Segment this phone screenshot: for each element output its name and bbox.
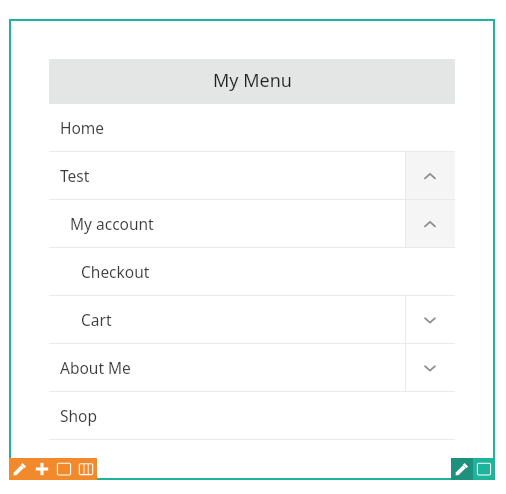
button[interactable]: Edit xyxy=(451,458,473,480)
button[interactable]: Add xyxy=(31,458,53,480)
staticText: Home xyxy=(60,117,105,138)
button[interactable]: Test xyxy=(49,152,405,200)
button[interactable]: Columns xyxy=(75,458,97,480)
button[interactable]: Edit xyxy=(9,458,31,480)
button[interactable]: Expand xyxy=(405,344,455,392)
button[interactable]: About Me xyxy=(49,344,405,392)
button[interactable]: My account xyxy=(49,200,405,248)
staticText: Cart xyxy=(81,309,112,330)
button[interactable]: Home xyxy=(49,104,455,152)
button[interactable]: Shop xyxy=(49,392,455,440)
button[interactable]: Expand xyxy=(405,296,455,344)
staticText: My account xyxy=(70,213,154,234)
button[interactable]: Duplicate xyxy=(473,458,495,480)
button[interactable]: Collapse xyxy=(405,200,455,248)
staticText: My Menu xyxy=(213,68,292,93)
staticText: Test xyxy=(60,165,90,186)
staticText: Shop xyxy=(60,405,97,426)
button[interactable]: Duplicate xyxy=(53,458,75,480)
button[interactable]: Checkout xyxy=(49,248,455,296)
staticText: Checkout xyxy=(81,261,150,282)
staticText: About Me xyxy=(60,357,131,378)
button[interactable]: Collapse xyxy=(405,152,455,200)
button[interactable]: My Menu xyxy=(49,59,455,104)
button[interactable]: Cart xyxy=(49,296,405,344)
